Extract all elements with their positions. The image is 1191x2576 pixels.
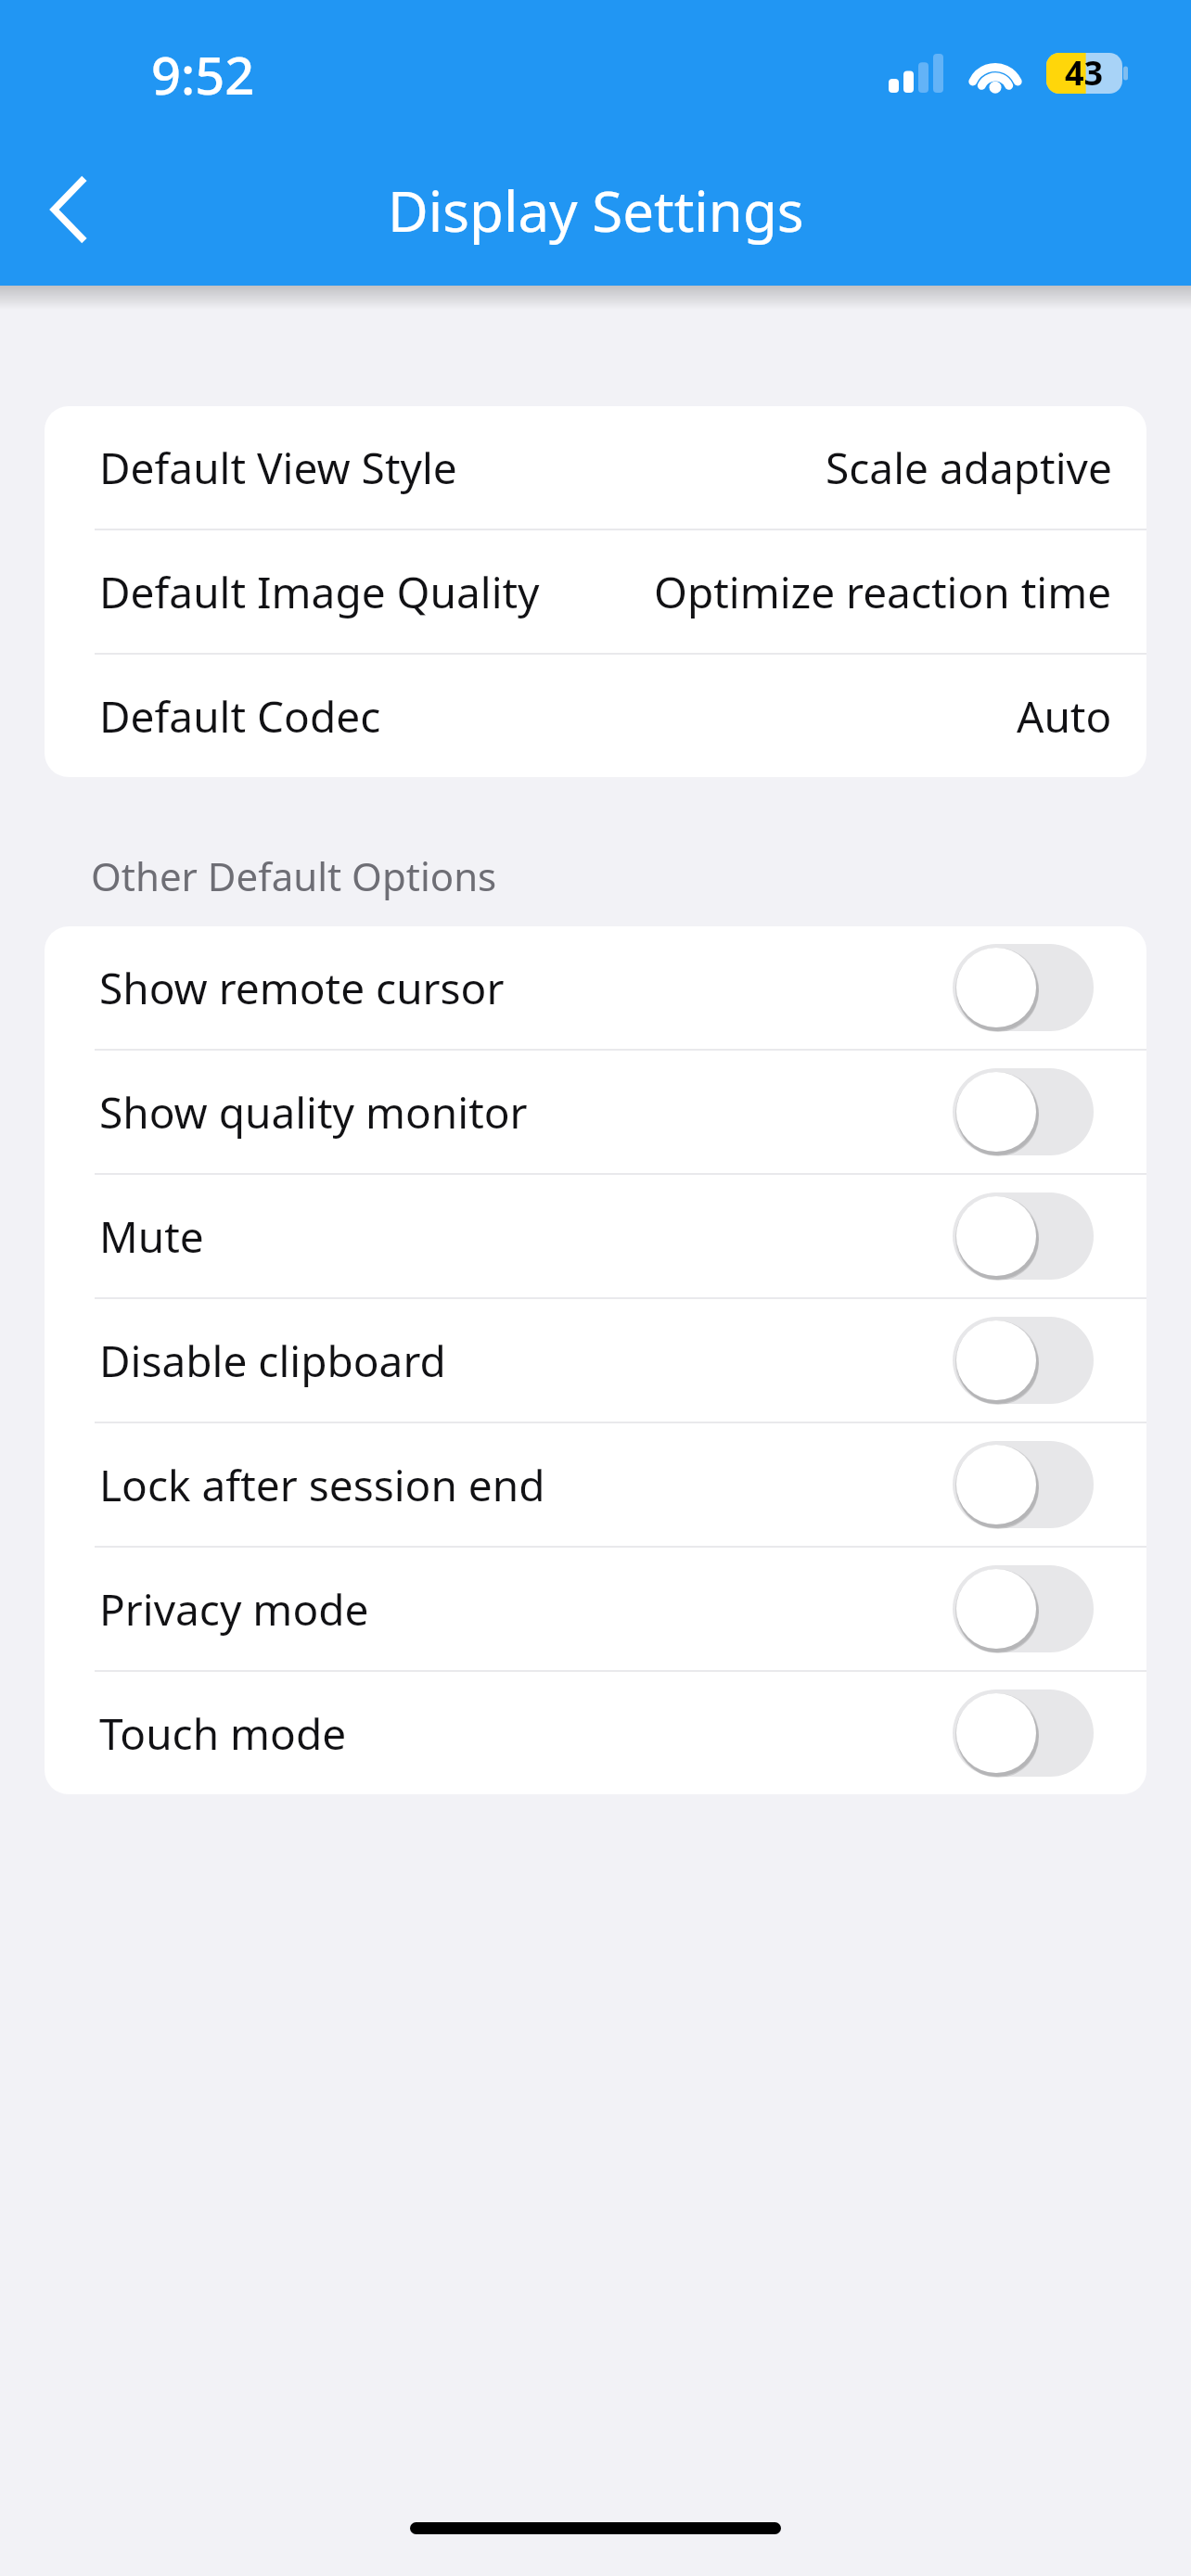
staticText: 43: [1065, 50, 1104, 96]
button[interactable]: Show remote cursor: [45, 926, 1146, 1051]
staticText: Mute: [99, 1207, 204, 1266]
staticText: Privacy mode: [99, 1580, 369, 1639]
staticText: 9:52: [151, 39, 255, 109]
button[interactable]: Privacy mode: [45, 1548, 1146, 1672]
staticText: Show quality monitor: [99, 1083, 528, 1141]
staticText: Default View Style: [99, 439, 457, 497]
staticText: Optimize reaction time: [654, 563, 1112, 621]
button[interactable]: Default Codec: [45, 655, 1146, 777]
button[interactable]: Toggle: [953, 1317, 1094, 1404]
button[interactable]: Show quality monitor: [45, 1051, 1146, 1175]
staticText: Auto: [1017, 687, 1112, 746]
staticText: Scale adaptive: [826, 439, 1112, 497]
staticText: Other Default Options: [91, 849, 497, 902]
button[interactable]: Back: [17, 156, 124, 263]
button[interactable]: Mute: [45, 1175, 1146, 1299]
button[interactable]: Toggle: [953, 1068, 1094, 1155]
staticText: Disable clipboard: [99, 1332, 446, 1390]
button[interactable]: Toggle: [953, 944, 1094, 1031]
button[interactable]: Touch mode: [45, 1672, 1146, 1794]
staticText: Default Codec: [99, 687, 381, 746]
button[interactable]: Lock after session end: [45, 1423, 1146, 1548]
staticText: Display Settings: [388, 172, 804, 249]
staticText: Default Image Quality: [99, 563, 540, 621]
button[interactable]: Toggle: [953, 1690, 1094, 1777]
button[interactable]: Default Image Quality: [45, 530, 1146, 655]
staticText: Lock after session end: [99, 1456, 545, 1514]
button[interactable]: Toggle: [953, 1441, 1094, 1528]
button[interactable]: Default View Style: [45, 406, 1146, 530]
button[interactable]: Toggle: [953, 1192, 1094, 1280]
button[interactable]: Toggle: [953, 1565, 1094, 1652]
button[interactable]: Disable clipboard: [45, 1299, 1146, 1423]
staticText: Touch mode: [99, 1704, 347, 1763]
staticText: Show remote cursor: [99, 959, 505, 1017]
